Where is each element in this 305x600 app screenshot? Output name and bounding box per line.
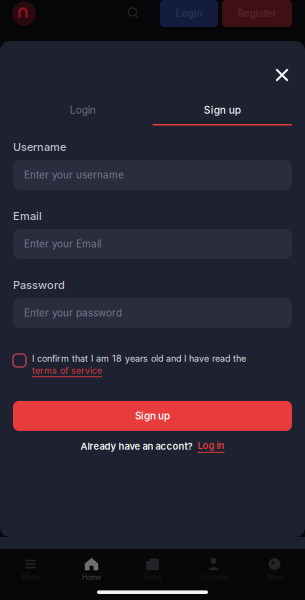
staticText: Enter your password xyxy=(24,307,122,319)
staticText: Login xyxy=(70,104,96,116)
button[interactable]: Login xyxy=(160,0,218,27)
staticText: Login xyxy=(175,7,202,19)
staticText: Home xyxy=(82,573,101,581)
button[interactable]: I confirm that I am 18 years old and I h… xyxy=(0,354,305,377)
button[interactable]: Log in xyxy=(197,440,224,453)
button[interactable]: More xyxy=(244,556,305,581)
staticText: Sign up xyxy=(135,410,170,422)
staticText: Enter your Email xyxy=(24,238,101,250)
button[interactable]: Menu xyxy=(0,556,61,581)
button[interactable]: Home xyxy=(12,1,36,25)
button[interactable]: Account xyxy=(183,556,244,581)
staticText: Password xyxy=(13,278,65,292)
button[interactable]: Sign up xyxy=(152,103,292,125)
staticText: I confirm that I am 18 years old and I h… xyxy=(32,353,246,364)
staticText: News xyxy=(143,573,162,581)
staticText: terms of service xyxy=(32,365,102,376)
button[interactable]: Sign up xyxy=(13,401,292,431)
button[interactable]: Register xyxy=(222,0,292,27)
staticText: More xyxy=(266,573,282,581)
button[interactable]: Login xyxy=(13,103,152,125)
staticText: Sign up xyxy=(204,104,241,116)
button[interactable]: Home xyxy=(61,556,122,581)
staticText: Menu xyxy=(21,573,39,581)
staticText: Log in xyxy=(197,440,224,451)
staticText: Account xyxy=(200,573,227,581)
button[interactable]: Search xyxy=(122,1,146,25)
staticText: Register xyxy=(237,7,276,19)
staticText: Enter your username xyxy=(24,169,124,181)
staticText: Email xyxy=(13,209,42,223)
staticText: Username xyxy=(13,140,66,154)
staticText: Already have an accont? xyxy=(80,441,192,452)
button[interactable]: News xyxy=(122,556,183,581)
button[interactable]: Close xyxy=(269,62,295,88)
